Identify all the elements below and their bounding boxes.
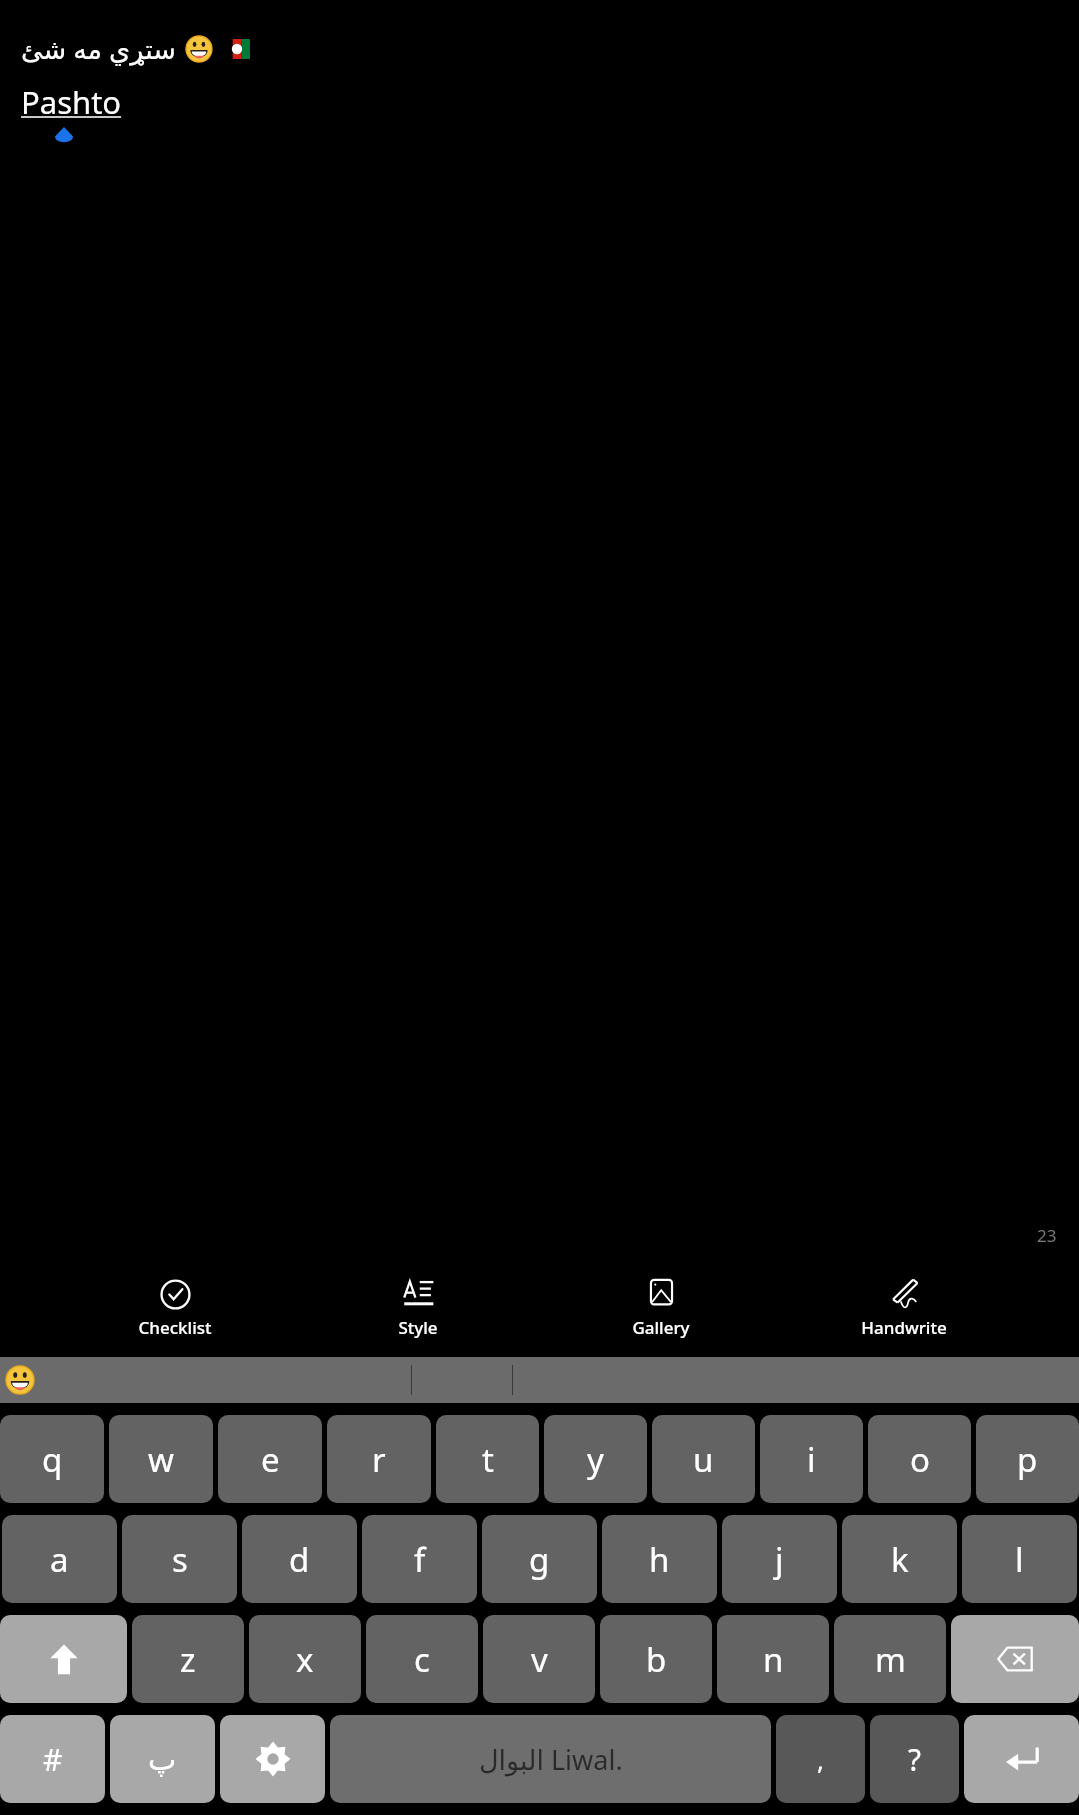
button[interactable]: Shift [0, 1615, 127, 1703]
staticText: a [50, 1537, 69, 1582]
button[interactable]: k [842, 1515, 957, 1603]
button[interactable]: Space [330, 1715, 771, 1803]
button[interactable]: z [132, 1615, 244, 1703]
button[interactable]: y [544, 1415, 647, 1503]
button[interactable]: u [652, 1415, 755, 1503]
staticText: , [817, 1742, 824, 1777]
button[interactable]: Emoji suggestion [6, 1366, 34, 1394]
staticText: h [649, 1537, 670, 1582]
button[interactable]: c [366, 1615, 478, 1703]
staticText: Style [398, 1316, 438, 1339]
staticText: s [172, 1537, 188, 1582]
staticText: m [875, 1637, 906, 1682]
staticText: ? [908, 1739, 922, 1780]
staticText: n [763, 1637, 784, 1682]
staticText: Handwrite [861, 1316, 947, 1339]
staticText: y [587, 1437, 604, 1482]
staticText: c [414, 1637, 430, 1682]
button[interactable]: d [242, 1515, 357, 1603]
button[interactable]: o [868, 1415, 971, 1503]
button[interactable]: h [602, 1515, 717, 1603]
button[interactable]: Checklist [107, 1279, 243, 1339]
button[interactable]: Handwrite [836, 1279, 972, 1339]
staticText: o [910, 1437, 930, 1482]
button[interactable]: r [327, 1415, 431, 1503]
staticText: w [148, 1437, 174, 1482]
button[interactable]: Style [350, 1279, 486, 1339]
staticText: Checklist [138, 1316, 212, 1339]
staticText: e [261, 1437, 280, 1482]
button[interactable]: m [834, 1615, 946, 1703]
staticText: پ [148, 1742, 177, 1777]
staticText: البوال Liwal. [479, 1741, 623, 1778]
staticText: z [180, 1637, 196, 1682]
button[interactable]: ? [870, 1715, 959, 1803]
button[interactable]: e [218, 1415, 322, 1503]
button[interactable]: s [122, 1515, 237, 1603]
staticText: t [482, 1437, 494, 1482]
button[interactable]: l [962, 1515, 1077, 1603]
button[interactable]: # [0, 1715, 105, 1803]
staticText: ستړي مه شئ [21, 30, 176, 67]
staticText: j [775, 1537, 784, 1582]
button[interactable]: , [776, 1715, 865, 1803]
staticText: x [296, 1637, 314, 1682]
button[interactable]: v [483, 1615, 595, 1703]
button[interactable]: Backspace [951, 1615, 1079, 1703]
staticText: Gallery [632, 1316, 690, 1339]
button[interactable]: f [362, 1515, 477, 1603]
button[interactable]: i [760, 1415, 863, 1503]
button[interactable]: a [2, 1515, 117, 1603]
button[interactable]: n [717, 1615, 829, 1703]
button[interactable]: Settings [220, 1715, 325, 1803]
staticText: p [1017, 1437, 1038, 1482]
staticText: k [891, 1537, 909, 1582]
button[interactable]: پ [110, 1715, 215, 1803]
button[interactable]: j [722, 1515, 837, 1603]
staticText: Pashto [21, 81, 122, 123]
staticText: d [289, 1537, 310, 1582]
button[interactable]: w [109, 1415, 213, 1503]
staticText: v [531, 1637, 548, 1682]
button[interactable]: x [249, 1615, 361, 1703]
staticText: 23 [1037, 1224, 1057, 1247]
staticText: b [646, 1637, 667, 1682]
staticText: u [693, 1437, 714, 1482]
staticText: l [1015, 1537, 1024, 1582]
staticText: r [372, 1437, 386, 1482]
staticText: i [807, 1437, 816, 1482]
button[interactable]: g [482, 1515, 597, 1603]
button[interactable]: Enter [964, 1715, 1079, 1803]
button[interactable]: Gallery [593, 1279, 729, 1339]
button[interactable]: t [436, 1415, 539, 1503]
button[interactable]: b [600, 1615, 712, 1703]
staticText: g [529, 1537, 550, 1582]
button[interactable]: q [0, 1415, 104, 1503]
staticText: q [42, 1437, 63, 1482]
staticText: f [414, 1537, 426, 1582]
staticText: # [43, 1739, 63, 1780]
button[interactable]: p [976, 1415, 1079, 1503]
